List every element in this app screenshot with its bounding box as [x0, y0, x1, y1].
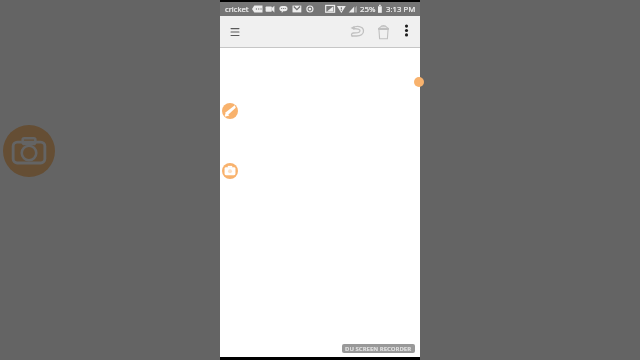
button[interactable]: Navigation menu [224, 21, 245, 42]
staticText: cricket [225, 4, 249, 14]
button[interactable]: Camera [222, 163, 238, 179]
staticText: 3:13 PM [386, 4, 416, 15]
staticText: 25% [360, 4, 376, 15]
staticText: DU SCREEN RECORDER [345, 345, 412, 353]
button[interactable]: More options [396, 20, 417, 41]
button[interactable]: Add [414, 77, 424, 87]
button[interactable]: Delete [372, 20, 395, 43]
button[interactable]: Brush [222, 103, 238, 119]
button[interactable]: Undo [346, 20, 369, 43]
